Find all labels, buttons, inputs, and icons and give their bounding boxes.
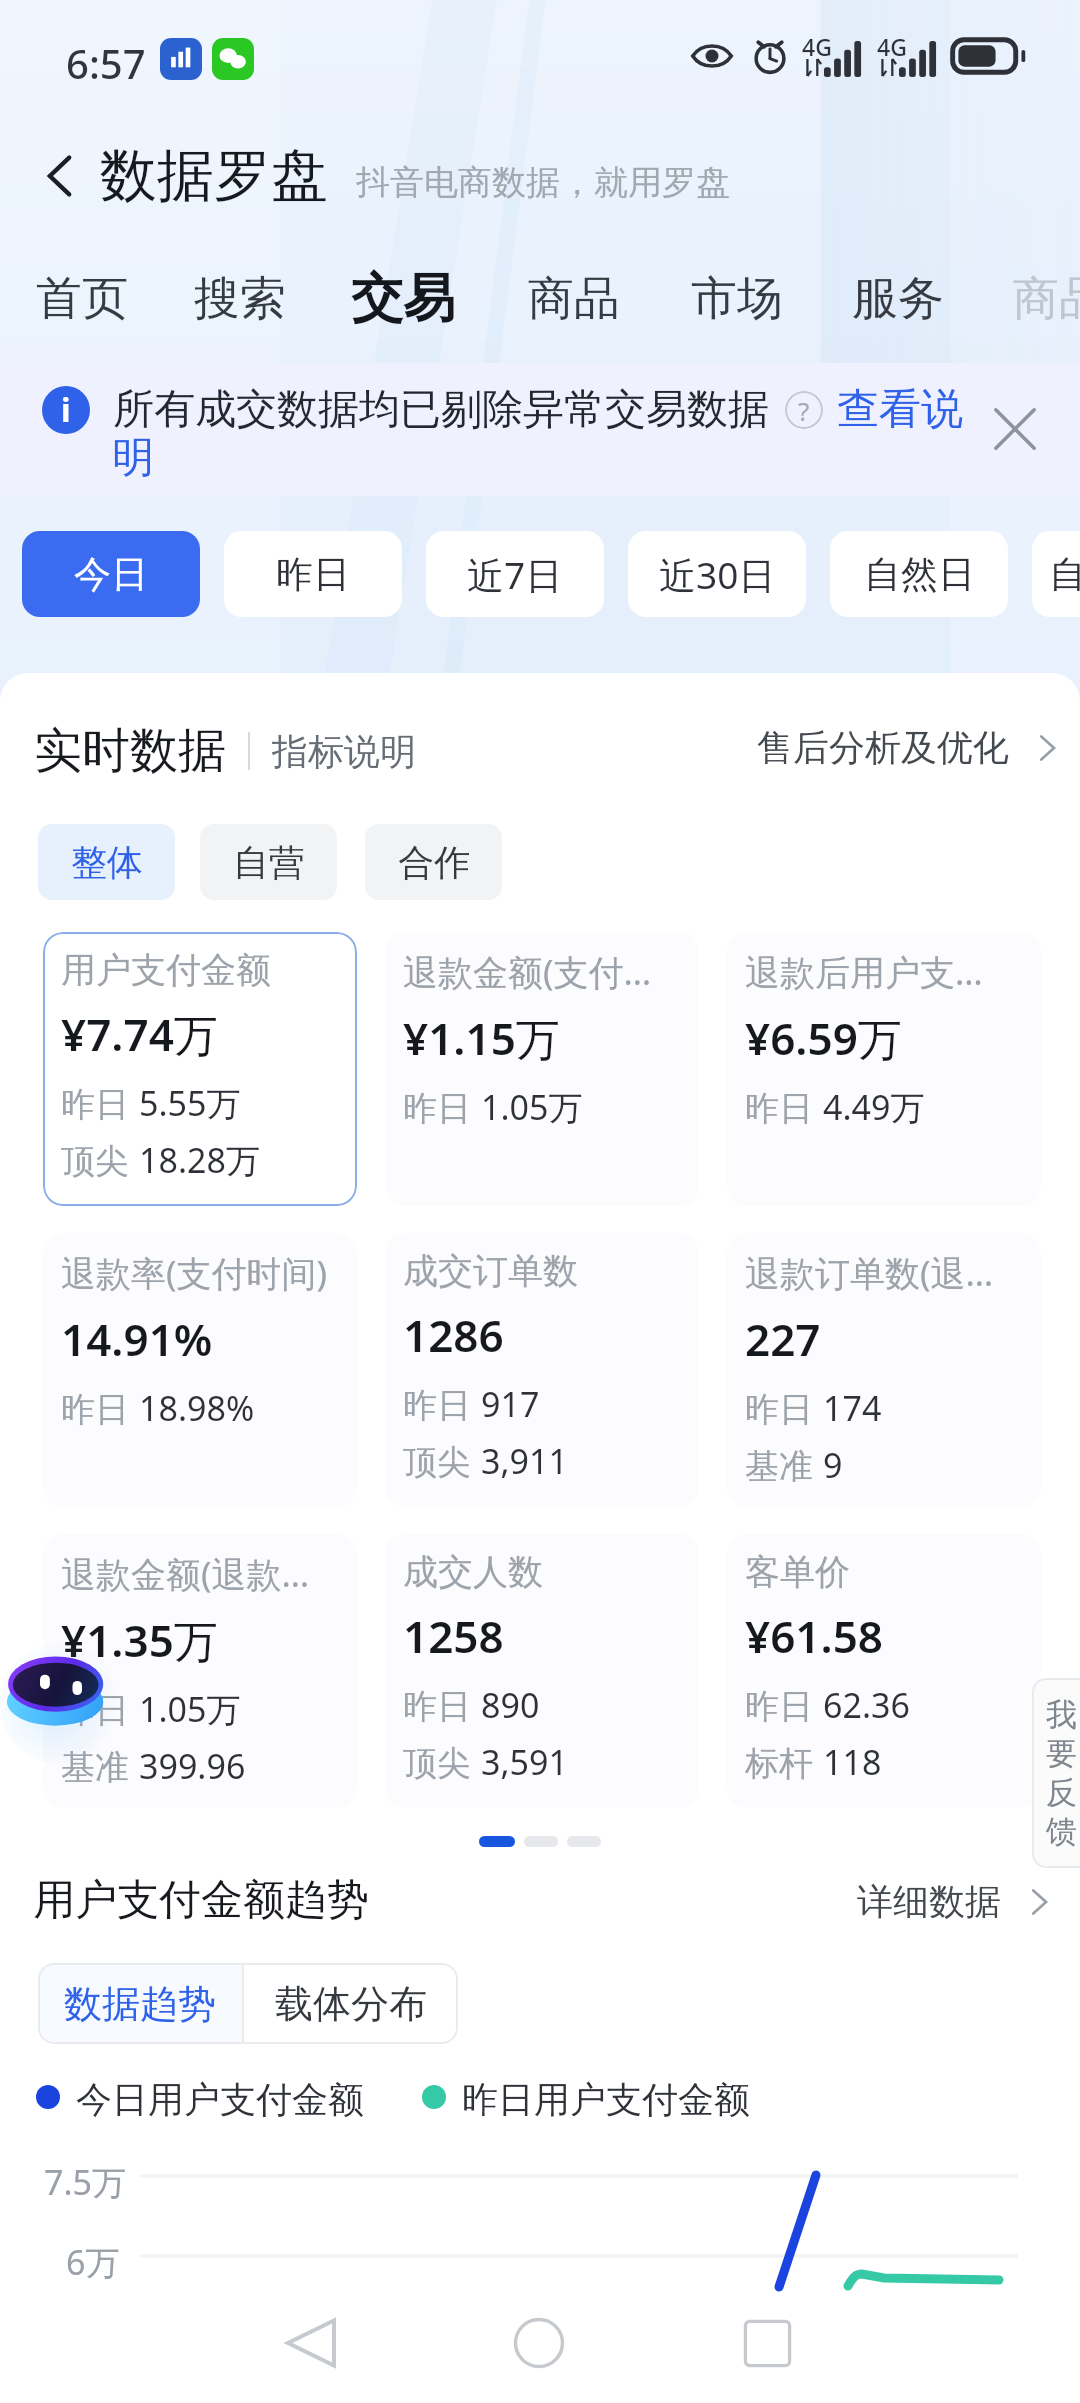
staticText: 昨日: [403, 1384, 471, 1427]
button[interactable]: 指标说明: [272, 729, 416, 774]
button[interactable]: 整体: [38, 824, 175, 900]
staticText: 1286: [403, 1305, 504, 1365]
staticText: 交易: [351, 266, 455, 332]
button[interactable]: 自营: [200, 824, 337, 900]
staticText: 要: [1046, 1734, 1077, 1773]
staticText: 数据趋势: [64, 1980, 216, 2028]
button[interactable]: 自: [1032, 531, 1080, 617]
staticText: 抖音电商数据，就用罗盘: [356, 161, 730, 204]
staticText: 62.36: [823, 1682, 910, 1728]
button[interactable]: 查看说: [837, 383, 963, 436]
staticText: 指标说明: [272, 729, 416, 774]
button[interactable]: 载体分布: [244, 1963, 458, 2044]
staticText: ?: [798, 393, 810, 428]
staticText: 227: [745, 1309, 821, 1369]
staticText: 昨日: [745, 1685, 813, 1728]
staticText: 6:57: [66, 36, 146, 90]
button[interactable]: 退款订单数(退…: [727, 1233, 1041, 1507]
staticText: 1258: [403, 1606, 504, 1666]
staticText: 馈: [1046, 1812, 1077, 1851]
button[interactable]: Back: [24, 140, 96, 212]
button[interactable]: 退款率(支付时间): [43, 1233, 357, 1507]
staticText: 市场: [691, 270, 783, 328]
staticText: 成交订单数: [403, 1249, 578, 1293]
staticText: 今日: [74, 551, 148, 598]
staticText: 昨日: [745, 1087, 813, 1130]
staticText: 399.96: [139, 1743, 246, 1789]
staticText: 首页: [36, 270, 128, 328]
staticText: 昨日: [276, 551, 350, 598]
staticText: 18.98%: [139, 1385, 255, 1431]
staticText: ¥61.58: [745, 1606, 883, 1666]
button[interactable]: 用户支付金额: [43, 932, 357, 1206]
staticText: 合作: [398, 840, 470, 885]
button[interactable]: 近30日: [628, 531, 806, 617]
button[interactable]: Home: [499, 2303, 579, 2383]
button[interactable]: 商品: [516, 254, 632, 344]
button[interactable]: Back: [271, 2303, 351, 2383]
staticText: 数据罗盘: [100, 140, 328, 212]
staticText: 昨日: [61, 1388, 129, 1431]
staticText: 近7日: [467, 549, 563, 600]
button[interactable]: 自然日: [830, 531, 1008, 617]
staticText: 4G: [802, 31, 832, 62]
staticText: 客单价: [745, 1550, 850, 1594]
staticText: 3,591: [481, 1739, 568, 1785]
staticText: 917: [481, 1381, 540, 1427]
button[interactable]: 详细数据: [857, 1879, 1055, 1924]
button[interactable]: 数据趋势: [38, 1963, 242, 2044]
staticText: 今日用户支付金额: [76, 2077, 364, 2117]
button[interactable]: 客单价: [727, 1534, 1041, 1808]
button[interactable]: 近7日: [426, 531, 604, 617]
staticText: 商品: [528, 270, 620, 328]
button[interactable]: 商品: [1001, 254, 1080, 344]
staticText: 174: [823, 1385, 882, 1431]
staticText: ¥6.59万: [745, 1008, 902, 1068]
button[interactable]: 退款后用户支…: [727, 932, 1041, 1206]
button[interactable]: 交易: [339, 254, 467, 344]
staticText: 基准: [61, 1746, 129, 1789]
staticText: 用户支付金额: [61, 948, 271, 992]
button[interactable]: 退款金额(退款…: [43, 1534, 357, 1808]
button[interactable]: 售后分析及优化: [757, 725, 1063, 770]
staticText: 基准: [745, 1445, 813, 1488]
staticText: 昨日: [61, 1083, 129, 1126]
staticText: 所有成交数据均已剔除异常交易数据: [113, 384, 769, 436]
staticText: 我: [1046, 1695, 1077, 1734]
staticText: 4G: [877, 31, 907, 62]
button[interactable]: Close: [981, 395, 1049, 463]
button[interactable]: 首页: [24, 254, 140, 344]
button[interactable]: 我: [1032, 1678, 1080, 1868]
button[interactable]: 今日: [22, 531, 200, 617]
button[interactable]: 市场: [679, 254, 795, 344]
staticText: 载体分布: [275, 1980, 427, 2028]
button[interactable]: 服务: [840, 254, 956, 344]
staticText: 明: [112, 432, 154, 485]
staticText: 昨日: [403, 1087, 471, 1130]
staticText: 4.49万: [823, 1084, 925, 1130]
button[interactable]: Assistant: [0, 1640, 116, 1766]
staticText: 14.91%: [61, 1309, 213, 1369]
button[interactable]: 昨日: [224, 531, 402, 617]
staticText: 1.05万: [481, 1084, 583, 1130]
staticText: 实时数据: [34, 721, 226, 781]
button[interactable]: 退款金额(支付…: [385, 932, 699, 1206]
button[interactable]: 成交人数: [385, 1534, 699, 1808]
staticText: 昨日: [403, 1685, 471, 1728]
staticText: ¥1.35万: [61, 1610, 218, 1670]
staticText: 自: [1049, 551, 1080, 598]
staticText: 昨日: [745, 1388, 813, 1431]
button[interactable]: 成交订单数: [385, 1233, 699, 1507]
staticText: 3,911: [481, 1438, 568, 1484]
button[interactable]: 合作: [365, 824, 502, 900]
staticText: 1.05万: [139, 1686, 241, 1732]
staticText: 昨日: [61, 1689, 129, 1732]
staticText: 6万: [66, 2239, 120, 2285]
staticText: 标杆: [745, 1742, 813, 1785]
button[interactable]: Recents: [727, 2303, 807, 2383]
staticText: 5.55万: [139, 1080, 241, 1126]
button[interactable]: 搜索: [182, 254, 298, 344]
staticText: 售后分析及优化: [757, 725, 1009, 770]
staticText: 整体: [71, 840, 143, 885]
staticText: 退款率(支付时间): [61, 1249, 328, 1297]
